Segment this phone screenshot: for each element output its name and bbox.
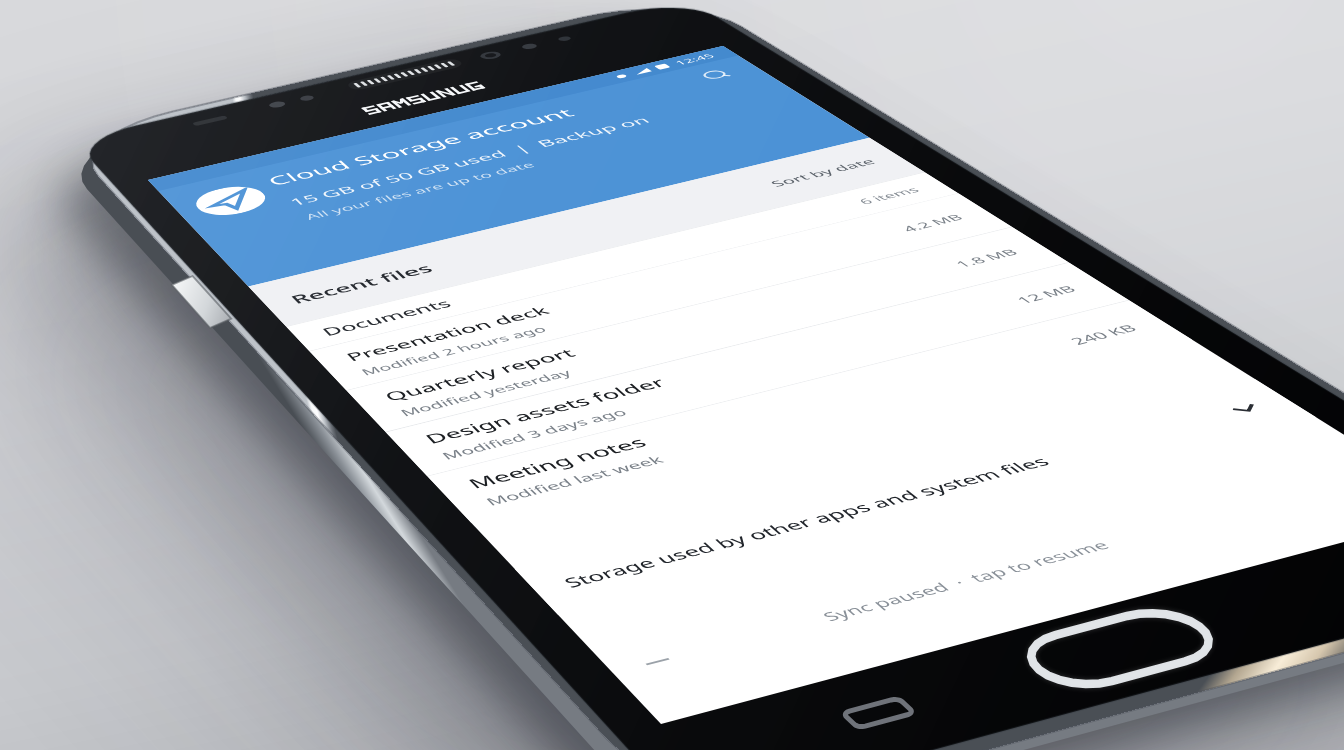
staticText: Sort by date (862, 564, 1038, 606)
staticText: 15 GB of 50 GB used | Backup on (176, 201, 821, 255)
button[interactable]: Recent files (0, 501, 1080, 669)
staticText: All your files are up to date (176, 277, 579, 321)
staticText: Recent files (42, 557, 273, 614)
staticText: Cloud Storage account (176, 90, 729, 161)
staticText: Documents (42, 693, 247, 745)
staticText: 6 items (941, 700, 1038, 738)
button[interactable]: Documents (0, 671, 1080, 750)
button[interactable]: Account (34, 106, 150, 222)
